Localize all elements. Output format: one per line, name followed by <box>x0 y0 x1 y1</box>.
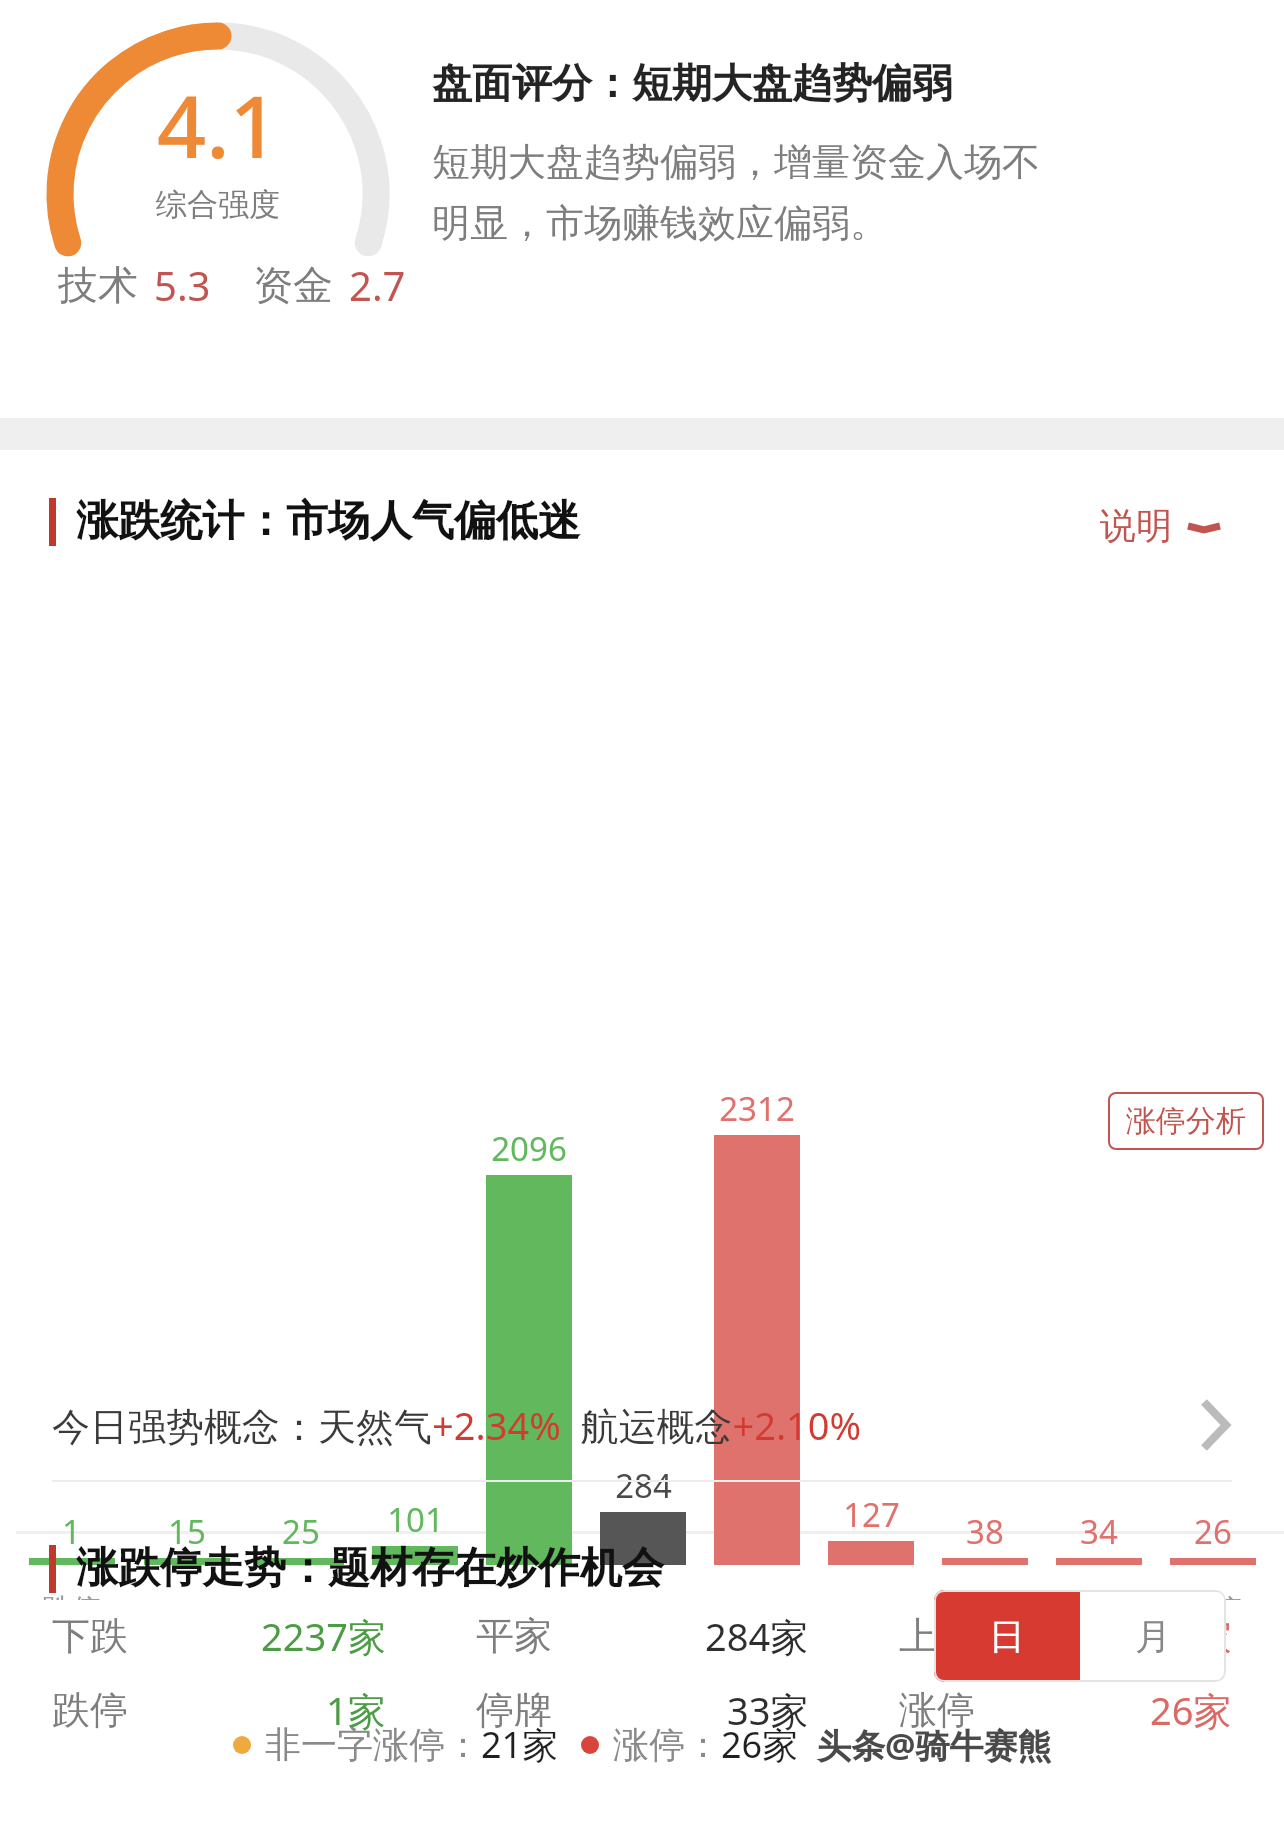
staticText: 38 <box>966 1509 1004 1554</box>
staticText: 2511家 <box>1107 1610 1232 1662</box>
button[interactable]: 今日强势概念：天然气+2.34% 航运概念+2.10% <box>0 1370 1284 1480</box>
staticText: 21家 <box>481 1720 559 1769</box>
staticText: 5.3 <box>154 258 211 312</box>
staticText: 平家 <box>476 1612 552 1660</box>
staticText: 26家 <box>721 1720 799 1769</box>
staticText: 33家 <box>727 1684 809 1736</box>
staticText: 跌停 <box>42 1591 102 1600</box>
staticText: 涨停分析 <box>1126 1102 1246 1140</box>
staticText: 15 <box>168 1509 206 1554</box>
staticText: 跌停 <box>52 1686 128 1734</box>
staticText: 说明 <box>1100 503 1172 548</box>
staticText: 2096 <box>491 1126 567 1171</box>
staticText: 非一字涨停： <box>265 1722 481 1767</box>
staticText: 2312 <box>719 1086 795 1131</box>
staticText: 资金 <box>253 260 333 310</box>
staticText: 涨跌停走势：题材存在炒作机会 <box>76 1542 664 1595</box>
staticText: 26 <box>1194 1509 1232 1554</box>
staticText: 上涨 <box>899 1612 975 1660</box>
staticText: ≥7% <box>1065 1591 1133 1600</box>
staticText: 短期大盘趋势偏弱，增量资金入场不明显，市场赚钱效应偏弱。 <box>432 138 1072 248</box>
staticText: 1家 <box>326 1684 386 1736</box>
button[interactable]: 日 <box>934 1590 1080 1682</box>
staticText: 2237家 <box>261 1610 386 1662</box>
button[interactable]: 月 <box>1080 1590 1226 1682</box>
staticText: 1 <box>62 1509 81 1554</box>
button[interactable]: 说明 <box>1092 495 1232 556</box>
staticText: 日 <box>989 1614 1025 1659</box>
staticText: 284 <box>615 1463 672 1508</box>
staticText: 技术 <box>58 260 138 310</box>
staticText: 26家 <box>1150 1684 1232 1736</box>
staticText: 284家 <box>705 1610 809 1662</box>
staticText: 停牌 <box>476 1686 552 1734</box>
staticText: 2.7 <box>349 258 406 312</box>
staticText: 34 <box>1080 1509 1118 1554</box>
staticText: 头条@骑牛赛熊 <box>817 1722 1052 1768</box>
staticText: 涨停： <box>613 1722 721 1767</box>
staticText: 涨停 <box>1183 1591 1243 1600</box>
staticText: 综合强度 <box>156 185 280 224</box>
staticText: 127 <box>843 1492 900 1537</box>
staticText: 4.1 <box>157 66 279 183</box>
staticText: 25 <box>282 1509 320 1554</box>
staticText: 盘面评分：短期大盘趋势偏弱 <box>432 58 952 108</box>
staticText: 涨跌统计：市场人气偏低迷 <box>76 495 580 548</box>
staticText: 今日强势概念：天然气+2.34% 航运概念+2.10% <box>52 1399 862 1451</box>
staticText: 月 <box>1135 1614 1171 1659</box>
staticText: 5~7% <box>947 1591 1024 1600</box>
staticText: 涨停 <box>899 1686 975 1734</box>
staticText: 下跌 <box>52 1612 128 1660</box>
staticText: 101 <box>387 1497 444 1542</box>
button[interactable]: 涨停分析 <box>1108 1092 1264 1150</box>
